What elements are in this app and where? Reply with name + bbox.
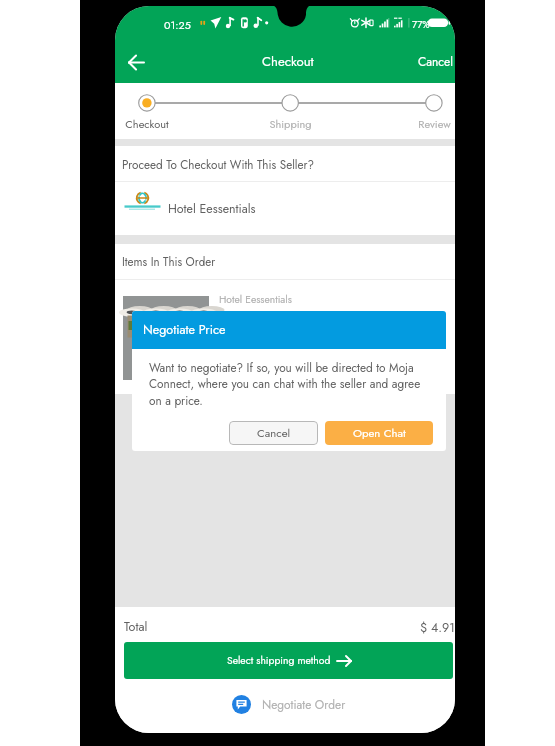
staticText: Negotiate Order (262, 696, 346, 713)
staticText: Quantity: 1 (219, 324, 266, 339)
staticText: Items In This Order (122, 254, 216, 271)
staticText: Cancel (418, 53, 453, 70)
staticText: Open Chat (353, 425, 406, 441)
staticText: $ 4.91 (420, 619, 455, 637)
staticText: Shipping (269, 116, 312, 132)
button[interactable]: Cancel (418, 53, 453, 70)
staticText: Hotel Eessentials (168, 200, 256, 218)
button[interactable]: Open Chat (325, 421, 433, 445)
button[interactable]: Negotiate Order (232, 695, 346, 714)
staticText: Hotel Eessentials (219, 292, 292, 307)
staticText: Proceed To Checkout With This Seller? (122, 156, 315, 173)
button[interactable]: Back (117, 43, 155, 81)
button[interactable]: Select shipping method (124, 642, 453, 679)
staticText: Select shipping method (227, 653, 331, 668)
staticText: Cancel (257, 425, 291, 441)
staticText: Negotiate Price (143, 321, 226, 339)
button[interactable]: Hotel Eessentials (115, 182, 455, 235)
staticText: Checkout (125, 116, 169, 132)
staticText: Want to negotiate? If so, you will be di… (149, 359, 429, 410)
staticText: Total (124, 618, 148, 636)
staticText: Checkout (262, 52, 314, 71)
button[interactable]: Cancel (229, 421, 318, 445)
staticText: 01:25 (164, 17, 191, 33)
staticText: 77% (412, 18, 430, 32)
staticText: Review (418, 116, 451, 132)
